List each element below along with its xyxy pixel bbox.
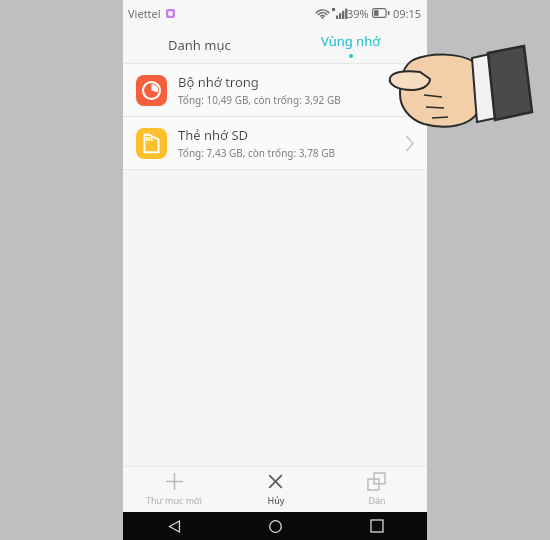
staticText: Vùng nhớ bbox=[321, 32, 381, 50]
staticText: Thẻ nhớ SD bbox=[178, 126, 249, 144]
button[interactable]: Back bbox=[123, 512, 225, 540]
staticText: 09:15 bbox=[393, 6, 422, 21]
staticText: Danh mục bbox=[168, 36, 231, 54]
button[interactable]: Dán bbox=[326, 467, 427, 512]
button[interactable]: Vùng nhớ bbox=[275, 26, 427, 63]
button[interactable]: Danh mục bbox=[123, 26, 275, 63]
staticText: Thư mục mới bbox=[146, 494, 202, 506]
staticText: Tổng: 10,49 GB, còn trống: 3,92 GB bbox=[178, 93, 341, 107]
staticText: Tổng: 7,43 GB, còn trống: 3,78 GB bbox=[178, 146, 335, 160]
button[interactable]: Hủy bbox=[225, 467, 326, 512]
staticText: Viettel bbox=[128, 6, 161, 21]
button[interactable]: Bộ nhớ trong bbox=[123, 64, 427, 116]
staticText: Dán bbox=[368, 494, 386, 506]
staticText: Bộ nhớ trong bbox=[178, 73, 259, 91]
button[interactable]: Recent apps bbox=[326, 512, 427, 540]
button[interactable]: Thẻ nhớ SD bbox=[123, 117, 427, 169]
button[interactable]: Home bbox=[225, 512, 326, 540]
button[interactable]: Thư mục mới bbox=[123, 467, 225, 512]
staticText: Hủy bbox=[267, 494, 285, 506]
staticText: 39% bbox=[347, 6, 369, 21]
